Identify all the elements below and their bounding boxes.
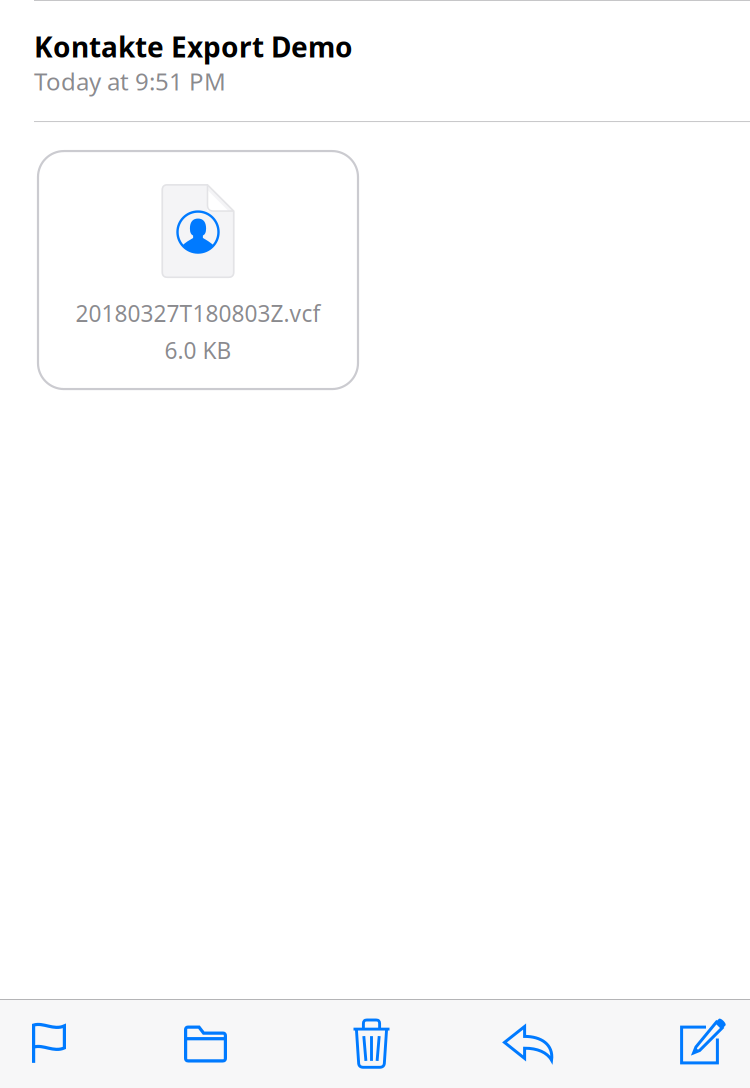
button[interactable]: Move to Folder [184,1000,227,1088]
button[interactable]: Delete [352,1000,391,1088]
staticText: Kontakte Export Demo [34,28,353,65]
button[interactable]: 20180327T180803Z.vcf, 6.0 KB, vCard atta… [38,151,358,389]
button[interactable]: Reply [503,1000,554,1088]
button[interactable]: Compose [680,1000,727,1088]
staticText: Today at 9:51 PM [34,65,226,97]
staticText: 6.0 KB [164,335,231,365]
staticText: 20180327T180803Z.vcf [75,298,320,328]
button[interactable]: Flag [32,1000,66,1088]
